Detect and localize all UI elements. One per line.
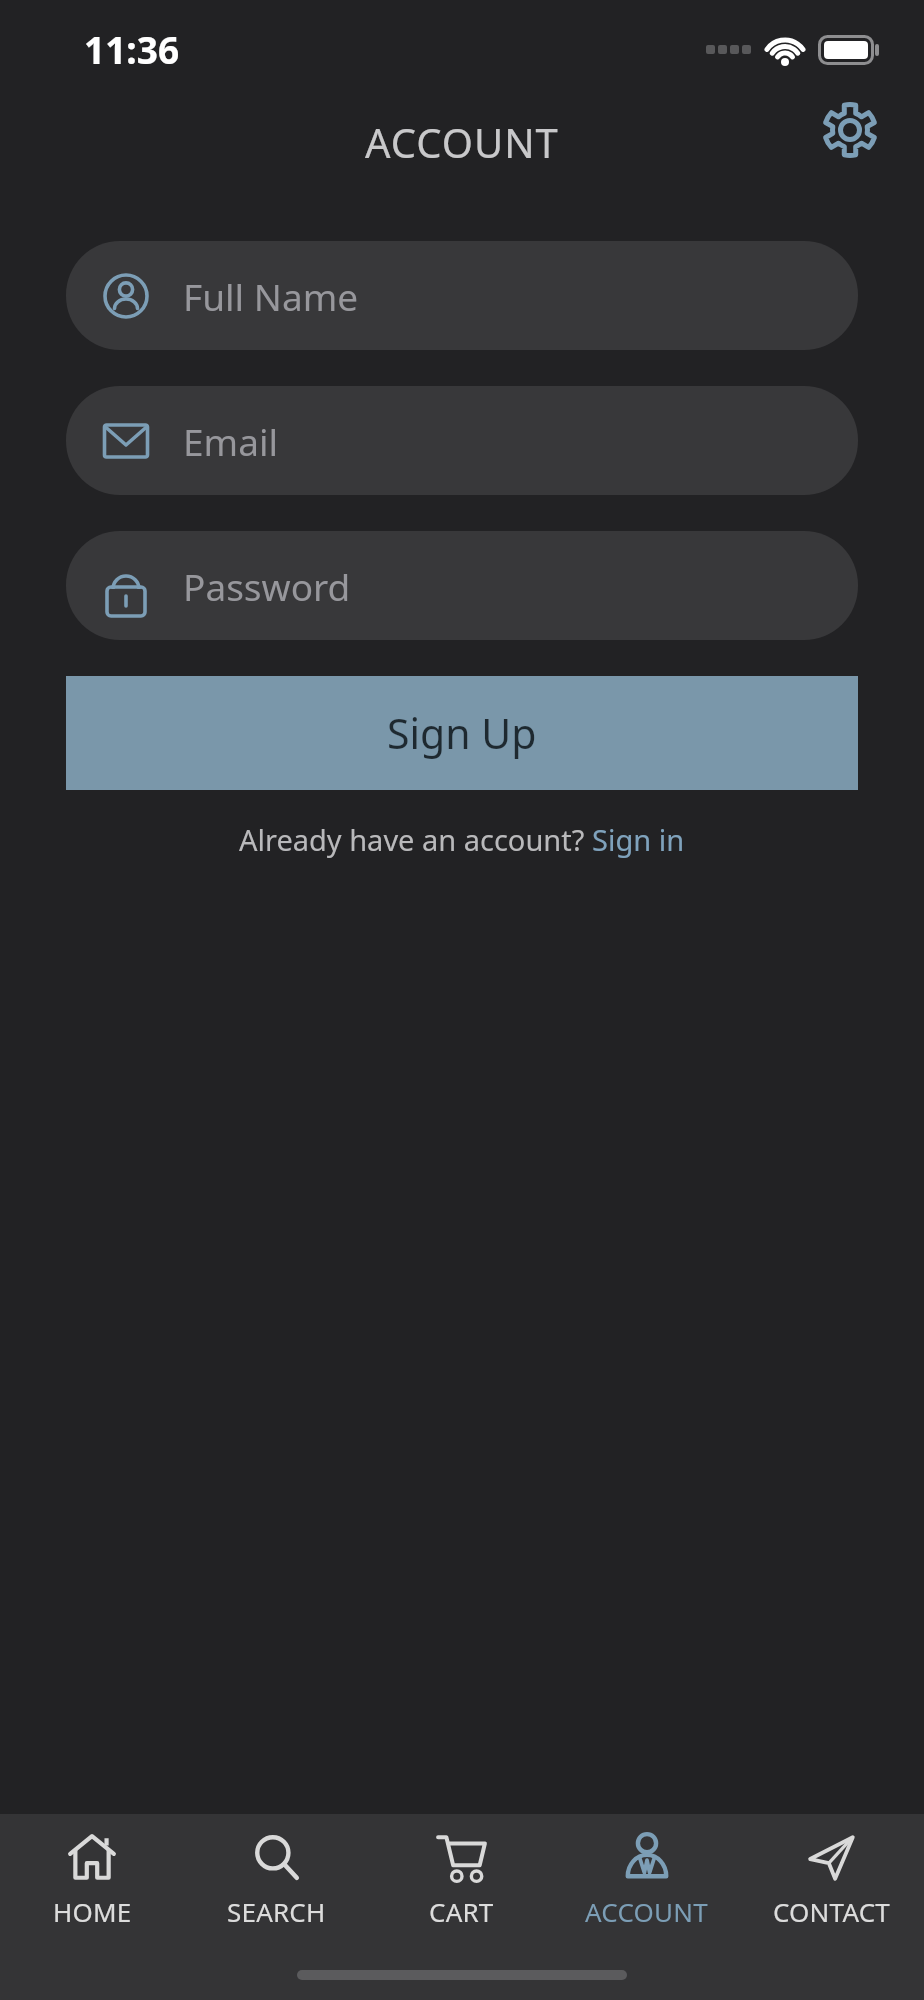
button[interactable]: Email xyxy=(66,386,858,495)
staticText: 11:36 xyxy=(84,24,180,74)
staticText: Email xyxy=(183,416,279,466)
button[interactable]: Password xyxy=(66,531,858,640)
button[interactable]: Full Name xyxy=(66,241,858,350)
staticText: Sign in xyxy=(592,820,685,859)
staticText: CART xyxy=(429,1894,494,1929)
staticText: Already have an account? xyxy=(239,820,592,859)
button[interactable]: ACCOUNT xyxy=(554,1832,739,1929)
button[interactable]: HOME xyxy=(0,1832,184,1929)
button[interactable]: SEARCH xyxy=(184,1832,369,1929)
staticText: CONTACT xyxy=(773,1894,890,1929)
staticText: Password xyxy=(183,561,351,611)
staticText: ACCOUNT xyxy=(585,1894,708,1929)
button[interactable]: CART xyxy=(369,1832,554,1929)
button[interactable]: CONTACT xyxy=(739,1832,924,1929)
staticText: Sign Up xyxy=(387,705,537,761)
staticText: Full Name xyxy=(183,271,359,321)
button[interactable] xyxy=(820,100,880,160)
staticText: HOME xyxy=(53,1894,132,1929)
button[interactable]: Sign Up xyxy=(66,676,858,790)
staticText: SEARCH xyxy=(227,1894,326,1929)
staticText: ACCOUNT xyxy=(365,115,559,169)
button[interactable]: Already have an account? xyxy=(239,820,685,859)
